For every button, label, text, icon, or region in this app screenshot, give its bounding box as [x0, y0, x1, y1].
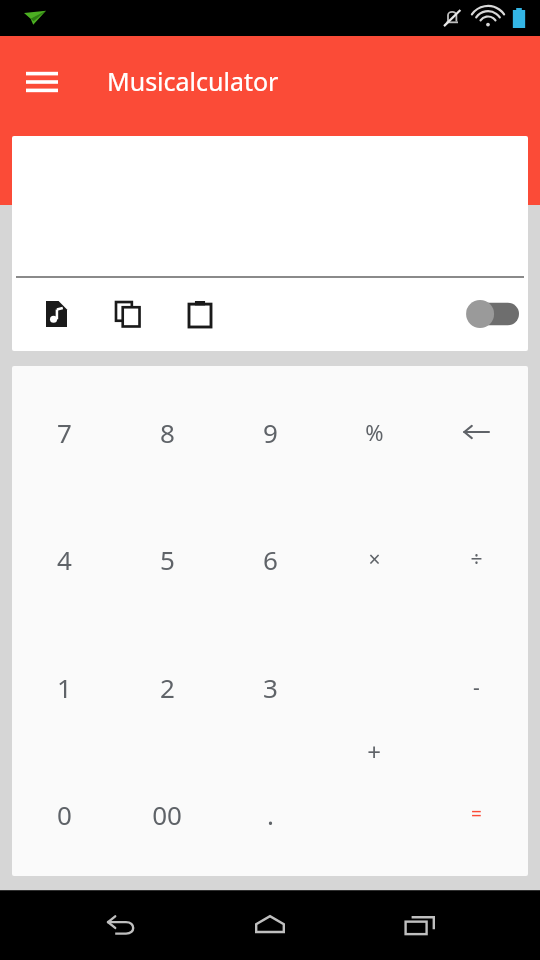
button[interactable]: + — [326, 696, 422, 806]
staticText: 8 — [160, 415, 175, 450]
button[interactable]: 9 — [222, 377, 318, 487]
staticText: 00 — [152, 797, 182, 832]
staticText: ÷ — [470, 545, 483, 574]
staticText: 4 — [57, 542, 72, 577]
staticText: × — [368, 545, 381, 574]
button[interactable]: Recent apps — [388, 903, 452, 947]
button[interactable]: 7 — [16, 377, 112, 487]
button[interactable]: % — [326, 377, 422, 487]
staticText: 7 — [57, 415, 72, 450]
button[interactable]: Copy — [104, 291, 152, 337]
staticText: 6 — [263, 542, 278, 577]
staticText: 1 — [57, 670, 72, 705]
button[interactable]: Home — [238, 903, 302, 947]
button[interactable]: 1 — [16, 632, 112, 742]
staticText: 9 — [263, 415, 278, 450]
button[interactable]: 5 — [119, 504, 215, 614]
button[interactable]: Toggle sound output — [458, 291, 526, 337]
staticText: 2 — [160, 670, 175, 705]
button[interactable]: 6 — [222, 504, 318, 614]
button[interactable]: 8 — [119, 377, 215, 487]
button[interactable]: - — [428, 632, 524, 742]
button[interactable]: ÷ — [428, 504, 524, 614]
button[interactable]: Open navigation menu — [16, 60, 68, 104]
button[interactable]: Backspace — [428, 377, 524, 487]
staticText: Musicalculator — [107, 64, 279, 98]
button[interactable]: = — [428, 759, 524, 869]
button[interactable]: Paste — [176, 291, 224, 337]
staticText: % — [365, 417, 384, 447]
button[interactable]: 3 — [222, 632, 318, 742]
staticText: 5 — [160, 542, 175, 577]
button[interactable]: Back — [88, 903, 152, 947]
staticText: 0 — [57, 797, 72, 832]
button[interactable]: Export as audio file — [32, 291, 80, 337]
staticText: . — [267, 797, 274, 832]
staticText: + — [367, 735, 381, 768]
staticText: - — [473, 673, 480, 702]
button[interactable]: . — [222, 759, 318, 869]
button[interactable]: 2 — [119, 632, 215, 742]
button[interactable]: × — [326, 504, 422, 614]
staticText: = — [471, 801, 482, 827]
button[interactable]: 4 — [16, 504, 112, 614]
staticText: 3 — [263, 670, 278, 705]
button[interactable]: 0 — [16, 759, 112, 869]
button[interactable]: 00 — [119, 759, 215, 869]
